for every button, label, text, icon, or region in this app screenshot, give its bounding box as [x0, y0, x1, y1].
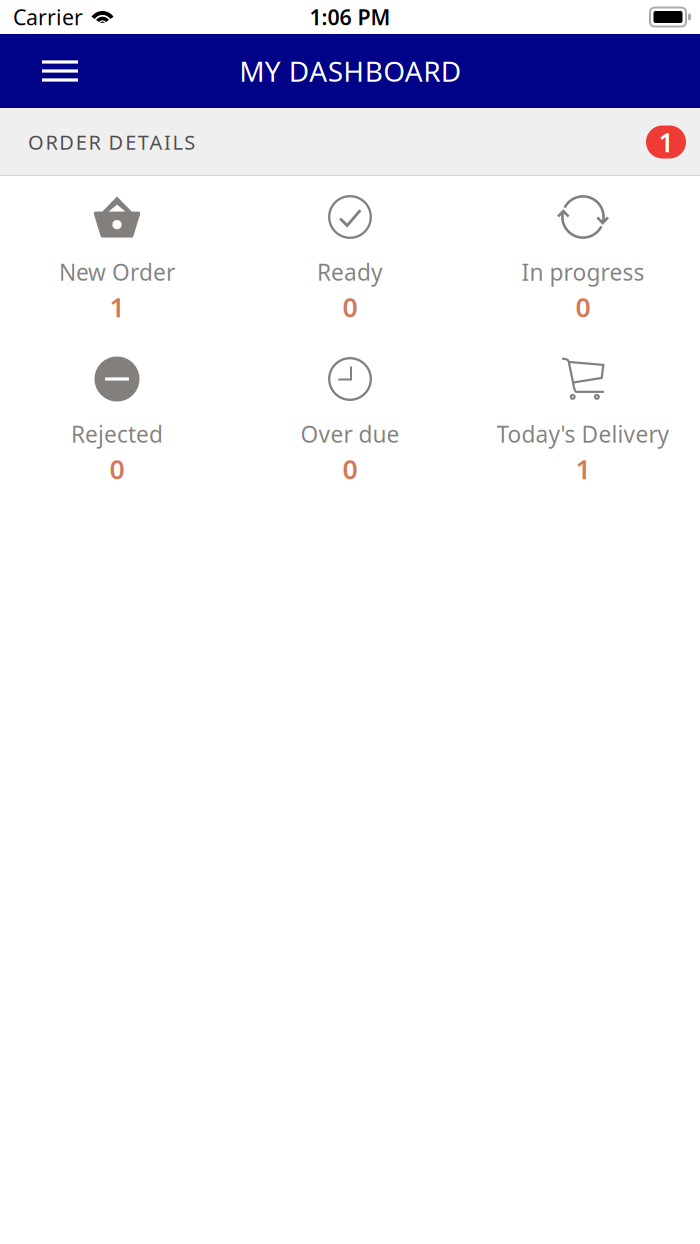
button[interactable]: In progress [466, 176, 699, 338]
staticText: 1 [109, 289, 124, 325]
staticText: Today's Delivery [496, 419, 669, 449]
button[interactable]: New Order [0, 176, 233, 338]
button[interactable]: Ready [233, 176, 466, 338]
staticText: 0 [342, 451, 357, 487]
staticText: MY DASHBOARD [239, 52, 461, 90]
staticText: In progress [521, 257, 644, 287]
staticText: Rejected [71, 419, 163, 449]
staticText: 1:06 PM [309, 3, 390, 31]
staticText: New Order [59, 257, 175, 287]
staticText: 0 [109, 451, 124, 487]
staticText: 1 [575, 451, 590, 487]
button[interactable]: Menu [0, 34, 78, 108]
staticText: 0 [342, 289, 357, 325]
button[interactable]: Today's Delivery [466, 338, 699, 500]
staticText: Ready [317, 257, 383, 287]
button[interactable]: Over due [233, 338, 466, 500]
staticText: 0 [575, 289, 590, 325]
button[interactable]: 1 [646, 125, 686, 158]
staticText: Over due [300, 419, 399, 449]
button[interactable]: Rejected [0, 338, 233, 500]
staticText: 1 [658, 124, 673, 160]
staticText: ORDER DETAILS [28, 129, 195, 155]
staticText: Carrier [13, 3, 83, 31]
